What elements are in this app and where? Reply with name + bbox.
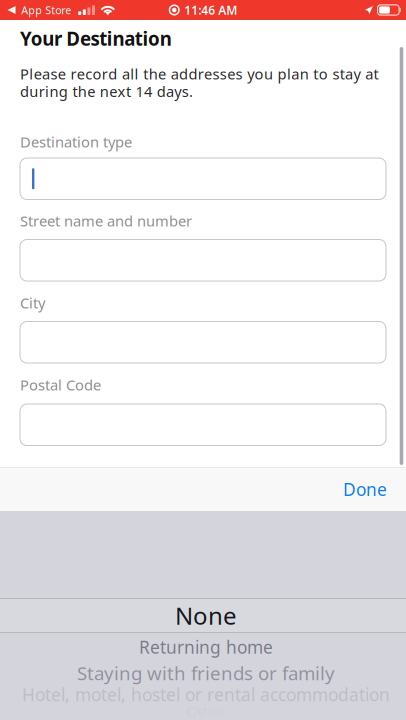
button[interactable]: Done [0, 468, 406, 511]
staticText: Destination type [20, 132, 132, 151]
staticText: City [20, 293, 45, 312]
staticText: Street name and number [20, 211, 192, 230]
staticText: Hotel, motel, hostel or rental accommoda… [22, 683, 390, 706]
staticText: Your Destination [20, 26, 172, 51]
staticText: Done [343, 478, 387, 501]
staticText: Postal Code [20, 375, 101, 394]
staticText: Staying with friends or family [77, 661, 335, 685]
staticText: Please record all the addresses you plan… [20, 64, 378, 101]
staticText: Returning home [139, 635, 273, 658]
staticText: App Store [21, 3, 71, 17]
staticText: 11:46 AM [184, 2, 237, 18]
staticText: None [175, 600, 237, 631]
